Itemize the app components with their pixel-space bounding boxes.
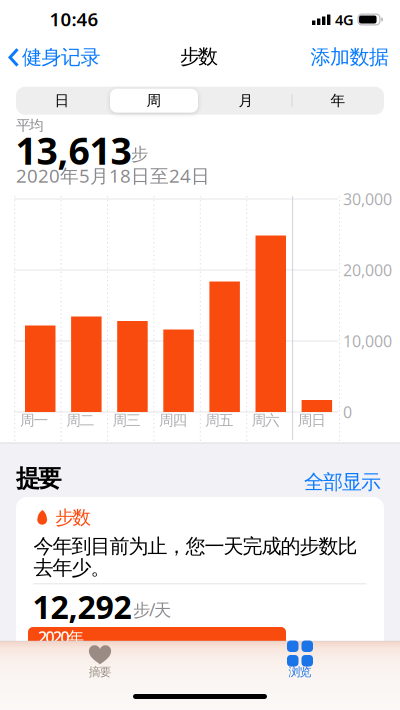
- staticText: 周: [146, 92, 161, 110]
- staticText: 13,613: [15, 125, 131, 175]
- staticText: 10,000: [343, 330, 392, 352]
- staticText: 周一: [20, 411, 48, 429]
- button[interactable]: 月: [200, 87, 292, 115]
- staticText: 平均: [16, 117, 44, 135]
- staticText: 周五: [205, 411, 234, 429]
- staticText: 月: [238, 92, 253, 110]
- staticText: 4G: [335, 10, 354, 29]
- button[interactable]: 摘要: [30, 641, 170, 685]
- staticText: 周六: [251, 411, 280, 429]
- staticText: 20,000: [343, 259, 392, 281]
- button[interactable]: 周: [110, 89, 198, 113]
- staticText: 健身记录: [22, 45, 100, 70]
- staticText: 浏览: [288, 665, 311, 679]
- button[interactable]: 全部显示: [291, 470, 381, 494]
- staticText: 提要: [16, 464, 61, 493]
- staticText: 去年少。: [33, 555, 110, 580]
- staticText: 周二: [66, 411, 95, 429]
- button[interactable]: 日: [16, 87, 108, 115]
- button[interactable]: 浏览: [230, 641, 370, 685]
- staticText: 添加数据: [310, 45, 389, 69]
- staticText: 周三: [113, 411, 141, 429]
- staticText: 步数: [180, 44, 218, 69]
- staticText: 步/天: [133, 598, 171, 621]
- staticText: 周四: [159, 411, 187, 429]
- button[interactable]: 添加数据: [297, 45, 389, 69]
- staticText: 30,000: [343, 188, 392, 210]
- staticText: 2020年: [38, 626, 84, 648]
- button[interactable]: 健身记录: [6, 42, 116, 72]
- staticText: 周日: [298, 411, 326, 429]
- staticText: 日: [54, 92, 69, 110]
- staticText: 摘要: [88, 665, 111, 679]
- staticText: 0: [343, 401, 352, 423]
- staticText: 今年到目前为止，您一天完成的步数比: [33, 534, 357, 559]
- staticText: 10:46: [49, 7, 98, 31]
- button[interactable]: 年: [292, 87, 384, 115]
- button[interactable]: 步数: [16, 497, 384, 710]
- staticText: 2020年5月18日至24日: [16, 163, 210, 188]
- staticText: 全部显示: [304, 470, 381, 494]
- staticText: 步: [131, 144, 148, 165]
- staticText: 年: [330, 92, 345, 110]
- staticText: 步数: [55, 506, 91, 529]
- staticText: 12,292: [32, 585, 131, 628]
